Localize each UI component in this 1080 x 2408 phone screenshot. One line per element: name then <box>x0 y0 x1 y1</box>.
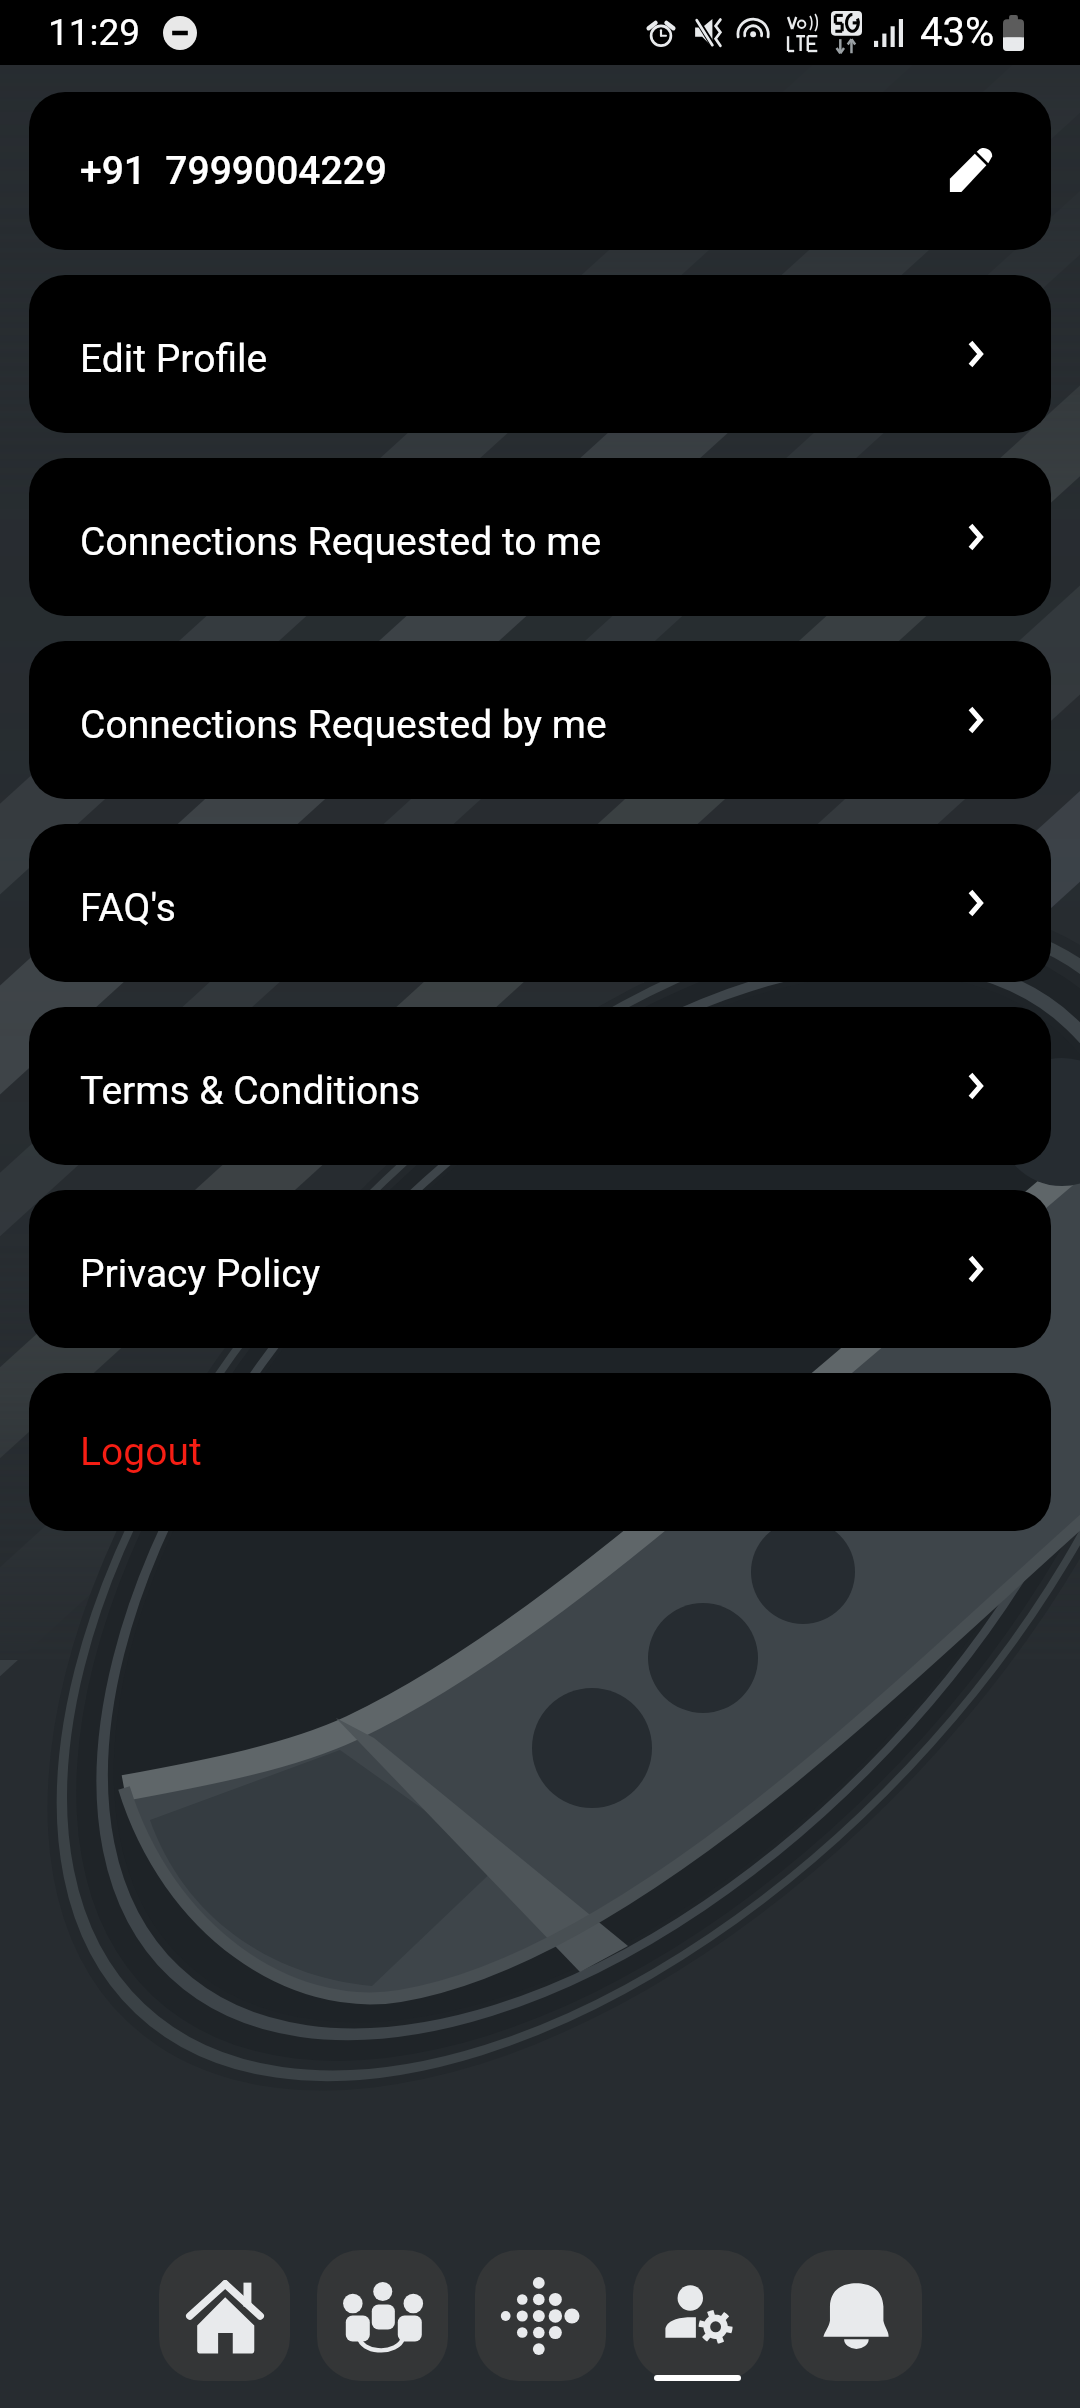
staticText: Terms & Conditions <box>80 1068 421 1114</box>
staticText: Connections Requested by me <box>80 702 607 748</box>
button[interactable]: Terms & Conditions <box>29 1007 1051 1165</box>
staticText: Privacy Policy <box>80 1251 321 1297</box>
staticText: 43% <box>920 9 995 56</box>
button[interactable]: Privacy Policy <box>29 1190 1051 1348</box>
button[interactable]: Home <box>159 2250 290 2381</box>
button[interactable]: Manage account <box>633 2250 764 2381</box>
button[interactable]: +91 7999004229 <box>29 92 1051 250</box>
button[interactable]: Edit Profile <box>29 275 1051 433</box>
button[interactable]: Connections Requested to me <box>29 458 1051 616</box>
staticText: +91 7999004229 <box>80 148 388 194</box>
button[interactable]: Activity <box>475 2250 606 2381</box>
button[interactable]: FAQ's <box>29 824 1051 982</box>
staticText: Logout <box>80 1429 202 1475</box>
staticText: Edit Profile <box>80 336 268 382</box>
staticText: 11:29 <box>48 11 141 54</box>
button[interactable]: Edit phone number <box>945 145 997 197</box>
staticText: Connections Requested to me <box>80 519 602 565</box>
button[interactable]: Notifications <box>791 2250 922 2381</box>
staticText: FAQ's <box>80 885 176 931</box>
button[interactable]: Logout <box>29 1373 1051 1531</box>
button[interactable]: Connections Requested by me <box>29 641 1051 799</box>
button[interactable]: Connections <box>317 2250 448 2381</box>
